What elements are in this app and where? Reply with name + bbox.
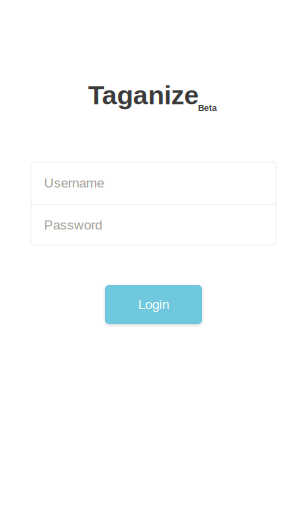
staticText: Username [44, 176, 104, 190]
textField[interactable]: Username [44, 176, 276, 190]
button[interactable]: Login [105, 285, 202, 324]
staticText: Beta [198, 103, 217, 113]
staticText: Password [44, 218, 102, 232]
staticText: Login [138, 297, 169, 312]
secureTextField[interactable]: Password [44, 218, 276, 232]
staticText: Taganize [88, 80, 199, 110]
